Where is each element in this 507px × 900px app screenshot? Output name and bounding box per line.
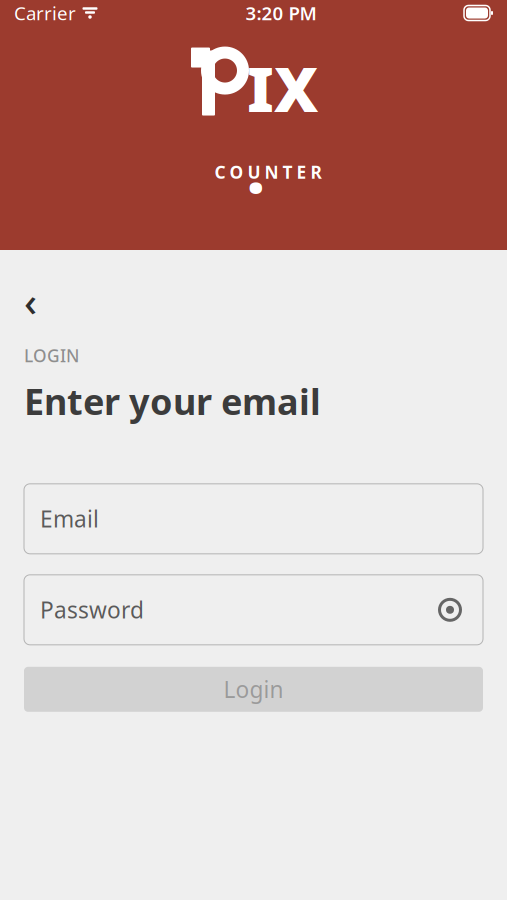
staticText: Enter your email [24, 377, 321, 425]
button[interactable]: Back [24, 286, 54, 316]
staticText: IX. [247, 48, 318, 210]
button[interactable]: Login [24, 667, 483, 712]
staticText: U [247, 160, 260, 183]
staticText: R [310, 160, 321, 183]
staticText: O [229, 160, 243, 183]
button[interactable]: Show password [433, 593, 467, 627]
staticText: Login [223, 674, 283, 704]
staticText: T [282, 160, 292, 183]
button[interactable]: Email [24, 484, 483, 554]
staticText: Email [40, 504, 99, 534]
staticText: N [264, 160, 278, 183]
staticText: 3:20 PM [245, 1, 316, 25]
staticText: C [214, 160, 225, 183]
staticText: LOGIN [24, 344, 79, 367]
staticText: E [296, 160, 306, 183]
staticText: Carrier [14, 1, 76, 25]
staticText: Password [40, 595, 144, 625]
staticText: ‹ [24, 274, 37, 327]
